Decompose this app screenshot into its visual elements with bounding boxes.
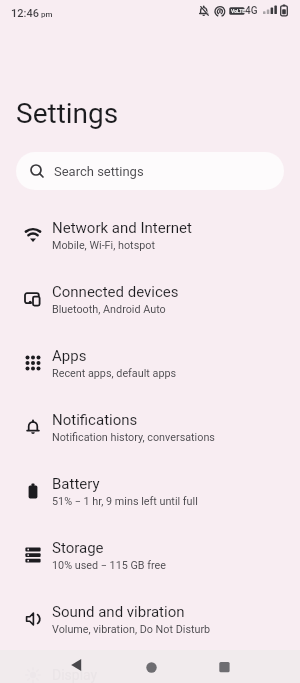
staticText: Mobile, Wi-Fi, hotspot — [52, 239, 155, 252]
button[interactable]: Storage — [0, 523, 300, 587]
staticText: VoLTE — [231, 8, 246, 14]
staticText: Apps — [52, 347, 87, 365]
staticText: Storage — [52, 539, 104, 557]
staticText: Volume, vibration, Do Not Disturb — [52, 623, 211, 636]
button[interactable] — [100, 650, 200, 683]
staticText: Settings — [16, 97, 119, 130]
staticText: Display — [52, 667, 98, 683]
button[interactable]: Apps — [0, 331, 300, 395]
button[interactable]: Connected devices — [0, 267, 300, 331]
button[interactable]: Notifications — [0, 395, 300, 459]
staticText: Connected devices — [52, 283, 179, 301]
button[interactable] — [200, 650, 300, 683]
staticText: Sound and vibration — [52, 603, 185, 621]
button[interactable] — [54, 644, 98, 677]
button[interactable]: Battery — [0, 459, 300, 523]
staticText: Recent apps, default apps — [52, 367, 177, 380]
staticText: Search settings — [54, 164, 144, 179]
button[interactable]: Sound and vibration — [0, 587, 300, 651]
staticText: 10% used − 115 GB free — [52, 559, 166, 572]
staticText: Notification history, conversations — [52, 431, 215, 444]
staticText: 51% − 1 hr, 9 mins left until full — [52, 495, 198, 508]
staticText: Battery — [52, 475, 100, 493]
staticText: Notifications — [52, 411, 138, 429]
staticText: pm — [39, 10, 53, 19]
staticText: Network and Internet — [52, 219, 192, 237]
button[interactable]: Search settings — [16, 152, 284, 190]
button[interactable] — [0, 650, 100, 683]
staticText: 4G — [245, 5, 258, 17]
staticText: 12:46 — [11, 7, 39, 20]
staticText: Bluetooth, Android Auto — [52, 303, 166, 316]
button[interactable]: Network and Internet — [0, 203, 300, 267]
